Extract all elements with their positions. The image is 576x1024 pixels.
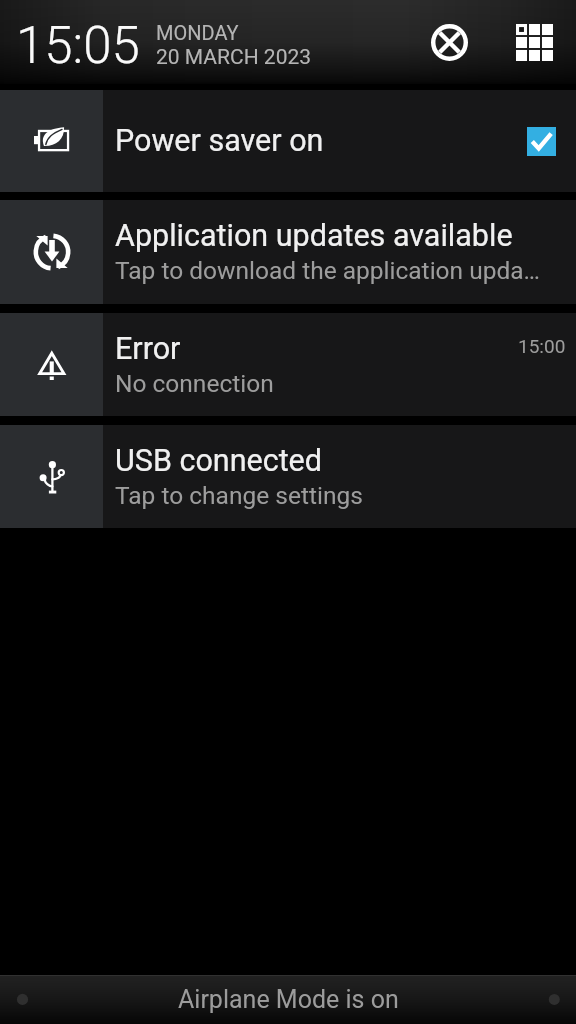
staticText: Application updates available bbox=[115, 218, 513, 254]
staticText: USB connected bbox=[115, 443, 322, 479]
staticText: 15:00 bbox=[518, 335, 566, 357]
staticText: MONDAY bbox=[156, 21, 239, 44]
button[interactable]: Power saver toggle bbox=[527, 127, 556, 156]
staticText: Tap to download the application updat… bbox=[115, 256, 546, 285]
staticText: No connection bbox=[115, 369, 274, 398]
staticText: 20 MARCH 2023 bbox=[156, 45, 312, 70]
button[interactable]: Clear all notifications bbox=[421, 14, 477, 70]
staticText: Airplane Mode is on bbox=[178, 985, 399, 1014]
staticText: Error bbox=[115, 331, 181, 367]
staticText: 15:05 bbox=[16, 16, 140, 76]
button[interactable]: USB connected bbox=[0, 425, 576, 528]
button[interactable]: Airplane Mode is on bbox=[0, 975, 576, 1024]
staticText: Tap to change settings bbox=[115, 481, 363, 510]
button[interactable]: Quick settings bbox=[506, 14, 562, 70]
button[interactable]: Application updates available bbox=[0, 200, 576, 304]
button[interactable]: Power saver on bbox=[0, 90, 576, 192]
button[interactable]: Error bbox=[0, 313, 576, 416]
staticText: Power saver on bbox=[115, 123, 324, 159]
